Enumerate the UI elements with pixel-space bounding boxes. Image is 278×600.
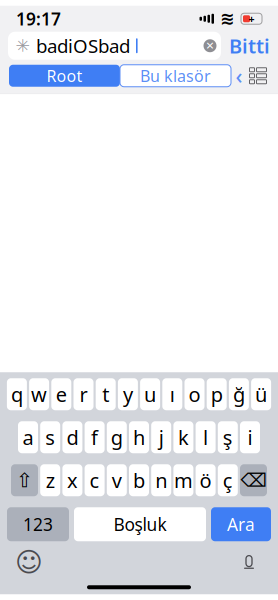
button[interactable]: b bbox=[129, 464, 149, 496]
staticText: i bbox=[247, 424, 252, 451]
staticText: a bbox=[22, 424, 33, 451]
staticText: ı bbox=[170, 381, 175, 408]
staticText: + bbox=[248, 12, 254, 26]
button[interactable]: k bbox=[173, 421, 193, 453]
button[interactable]: 123 bbox=[7, 507, 69, 541]
button[interactable]: Root bbox=[9, 65, 120, 87]
staticText: Boşluk bbox=[113, 513, 166, 536]
button[interactable]: Clear text bbox=[199, 34, 221, 58]
button[interactable]: y bbox=[118, 378, 138, 410]
button[interactable]: ı bbox=[162, 378, 182, 410]
button[interactable]: ç bbox=[218, 464, 238, 496]
staticText: x bbox=[67, 467, 78, 494]
button[interactable]: u bbox=[140, 378, 160, 410]
button[interactable]: o bbox=[184, 378, 204, 410]
staticText: j bbox=[159, 424, 164, 451]
staticText: n bbox=[155, 467, 167, 494]
staticText: badiOSbad bbox=[36, 33, 130, 58]
button[interactable]: Dictate bbox=[232, 547, 266, 577]
button[interactable]: ş bbox=[218, 421, 238, 453]
staticText: ✕ bbox=[205, 40, 214, 52]
staticText: p bbox=[211, 381, 223, 408]
button[interactable]: i bbox=[240, 421, 260, 453]
button[interactable]: d bbox=[62, 421, 82, 453]
button[interactable]: ö bbox=[196, 464, 216, 496]
button[interactable]: Bu klasör bbox=[120, 65, 231, 87]
button[interactable]: w bbox=[29, 378, 49, 410]
staticText: g bbox=[111, 424, 123, 451]
button[interactable]: e bbox=[51, 378, 71, 410]
staticText: d bbox=[66, 424, 78, 451]
staticText: r bbox=[79, 381, 87, 408]
button[interactable]: Boşluk bbox=[74, 507, 206, 541]
staticText: f bbox=[91, 424, 98, 451]
button[interactable]: v bbox=[107, 464, 127, 496]
staticText: q bbox=[11, 381, 23, 408]
staticText: m bbox=[174, 467, 193, 494]
button[interactable]: q bbox=[7, 378, 27, 410]
button[interactable]: Back bbox=[231, 64, 247, 88]
button[interactable]: ğ bbox=[229, 378, 249, 410]
staticText: 123 bbox=[23, 513, 53, 536]
button[interactable]: g bbox=[107, 421, 127, 453]
staticText: 19:17 bbox=[16, 7, 61, 30]
staticText: ö bbox=[200, 467, 212, 494]
button[interactable]: x bbox=[62, 464, 82, 496]
button[interactable]: Ara bbox=[211, 507, 271, 541]
staticText: o bbox=[188, 381, 200, 408]
button[interactable]: l bbox=[196, 421, 216, 453]
button[interactable]: t bbox=[96, 378, 116, 410]
staticText: ‹ bbox=[235, 62, 242, 90]
staticText: u bbox=[144, 381, 156, 408]
button[interactable]: ü bbox=[251, 378, 271, 410]
staticText: l bbox=[203, 424, 208, 451]
button[interactable]: m bbox=[173, 464, 193, 496]
staticText: Bitti bbox=[229, 32, 270, 59]
staticText: ≋ bbox=[220, 9, 235, 29]
button[interactable]: p bbox=[207, 378, 227, 410]
button[interactable]: a bbox=[18, 421, 38, 453]
staticText: y bbox=[123, 381, 133, 408]
button[interactable]: c bbox=[85, 464, 105, 496]
staticText: t bbox=[102, 381, 109, 408]
staticText: z bbox=[46, 467, 55, 494]
staticText: k bbox=[178, 424, 189, 451]
staticText: e bbox=[56, 381, 67, 408]
button[interactable]: Emoji bbox=[12, 547, 46, 577]
button[interactable]: j bbox=[151, 421, 171, 453]
staticText: ş bbox=[223, 424, 233, 451]
button[interactable]: ⇧ bbox=[11, 464, 38, 496]
staticText: ⇧ bbox=[16, 469, 33, 492]
button[interactable]: ⌫ bbox=[240, 464, 267, 496]
staticText: ü bbox=[255, 381, 267, 408]
staticText: h bbox=[133, 424, 145, 451]
staticText: ğ bbox=[233, 381, 245, 408]
button[interactable]: r bbox=[73, 378, 93, 410]
button[interactable]: n bbox=[151, 464, 171, 496]
staticText: Ara bbox=[227, 513, 255, 536]
staticText: Bu klasör bbox=[140, 65, 211, 86]
button[interactable]: List view bbox=[247, 64, 269, 88]
staticText: ☺ bbox=[15, 547, 43, 577]
staticText: s bbox=[45, 424, 55, 451]
staticText: ✳ bbox=[15, 36, 30, 56]
staticText: c bbox=[90, 467, 100, 494]
button[interactable]: h bbox=[129, 421, 149, 453]
button[interactable]: z bbox=[40, 464, 60, 496]
staticText: ⌫ bbox=[240, 470, 266, 491]
staticText: w bbox=[31, 381, 47, 408]
button[interactable]: Bitti bbox=[229, 32, 270, 59]
staticText: Root bbox=[46, 65, 82, 86]
staticText: ç bbox=[223, 467, 233, 494]
staticText: v bbox=[112, 467, 122, 494]
staticText: b bbox=[133, 467, 145, 494]
button[interactable]: f bbox=[85, 421, 105, 453]
button[interactable]: s bbox=[40, 421, 60, 453]
